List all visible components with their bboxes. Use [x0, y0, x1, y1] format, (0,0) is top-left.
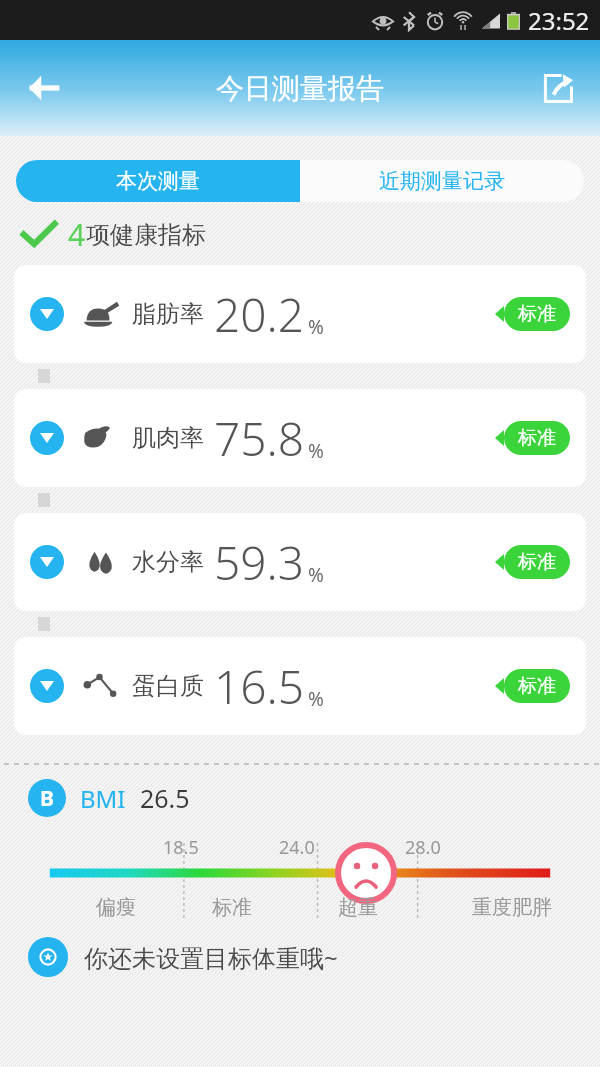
button[interactable]: 本次测量 [16, 160, 300, 202]
button[interactable]: 水分率 [14, 513, 586, 611]
staticText: 24.0 [279, 835, 315, 860]
staticText: B [40, 784, 54, 813]
staticText: 近期测量记录 [379, 168, 505, 194]
staticText: 标准 [518, 426, 556, 450]
staticText: 23:52 [528, 4, 590, 37]
staticText: 今日测量报告 [216, 71, 384, 106]
staticText: 75.8 [214, 407, 305, 470]
staticText: 水分率 [132, 547, 204, 577]
button[interactable]: 脂肪率 [14, 265, 586, 363]
staticText: % [308, 686, 324, 712]
staticText: 标准 [518, 674, 556, 698]
button[interactable]: Share [532, 62, 584, 114]
staticText: 标准 [518, 550, 556, 574]
staticText: 你还未设置目标体重哦~ [84, 941, 338, 974]
button[interactable]: 你还未设置目标体重哦~ [28, 937, 600, 977]
staticText: 标准 [212, 895, 252, 920]
staticText: 28.0 [405, 835, 441, 860]
button[interactable]: 近期测量记录 [300, 160, 584, 202]
staticText: % [308, 438, 324, 464]
staticText: 16.5 [214, 655, 305, 718]
staticText: 项健康指标 [86, 220, 206, 250]
staticText: 4 [68, 214, 86, 255]
staticText: 标准 [518, 302, 556, 326]
staticText: 蛋白质 [132, 671, 204, 701]
staticText: 重度肥胖 [472, 895, 552, 920]
staticText: 本次测量 [116, 168, 200, 194]
staticText: 26.5 [140, 781, 190, 815]
staticText: 偏瘦 [96, 895, 136, 920]
button[interactable]: Back [16, 60, 72, 116]
staticText: 59.3 [214, 531, 305, 594]
staticText: % [308, 562, 324, 588]
staticText: 超重 [338, 895, 378, 920]
staticText: 18.5 [163, 835, 199, 860]
button[interactable]: 蛋白质 [14, 637, 586, 735]
button[interactable]: 肌肉率 [14, 389, 586, 487]
staticText: 肌肉率 [132, 423, 204, 453]
staticText: 20.2 [214, 283, 305, 346]
staticText: BMI [80, 782, 126, 815]
staticText: % [308, 314, 324, 340]
staticText: 脂肪率 [132, 299, 204, 329]
